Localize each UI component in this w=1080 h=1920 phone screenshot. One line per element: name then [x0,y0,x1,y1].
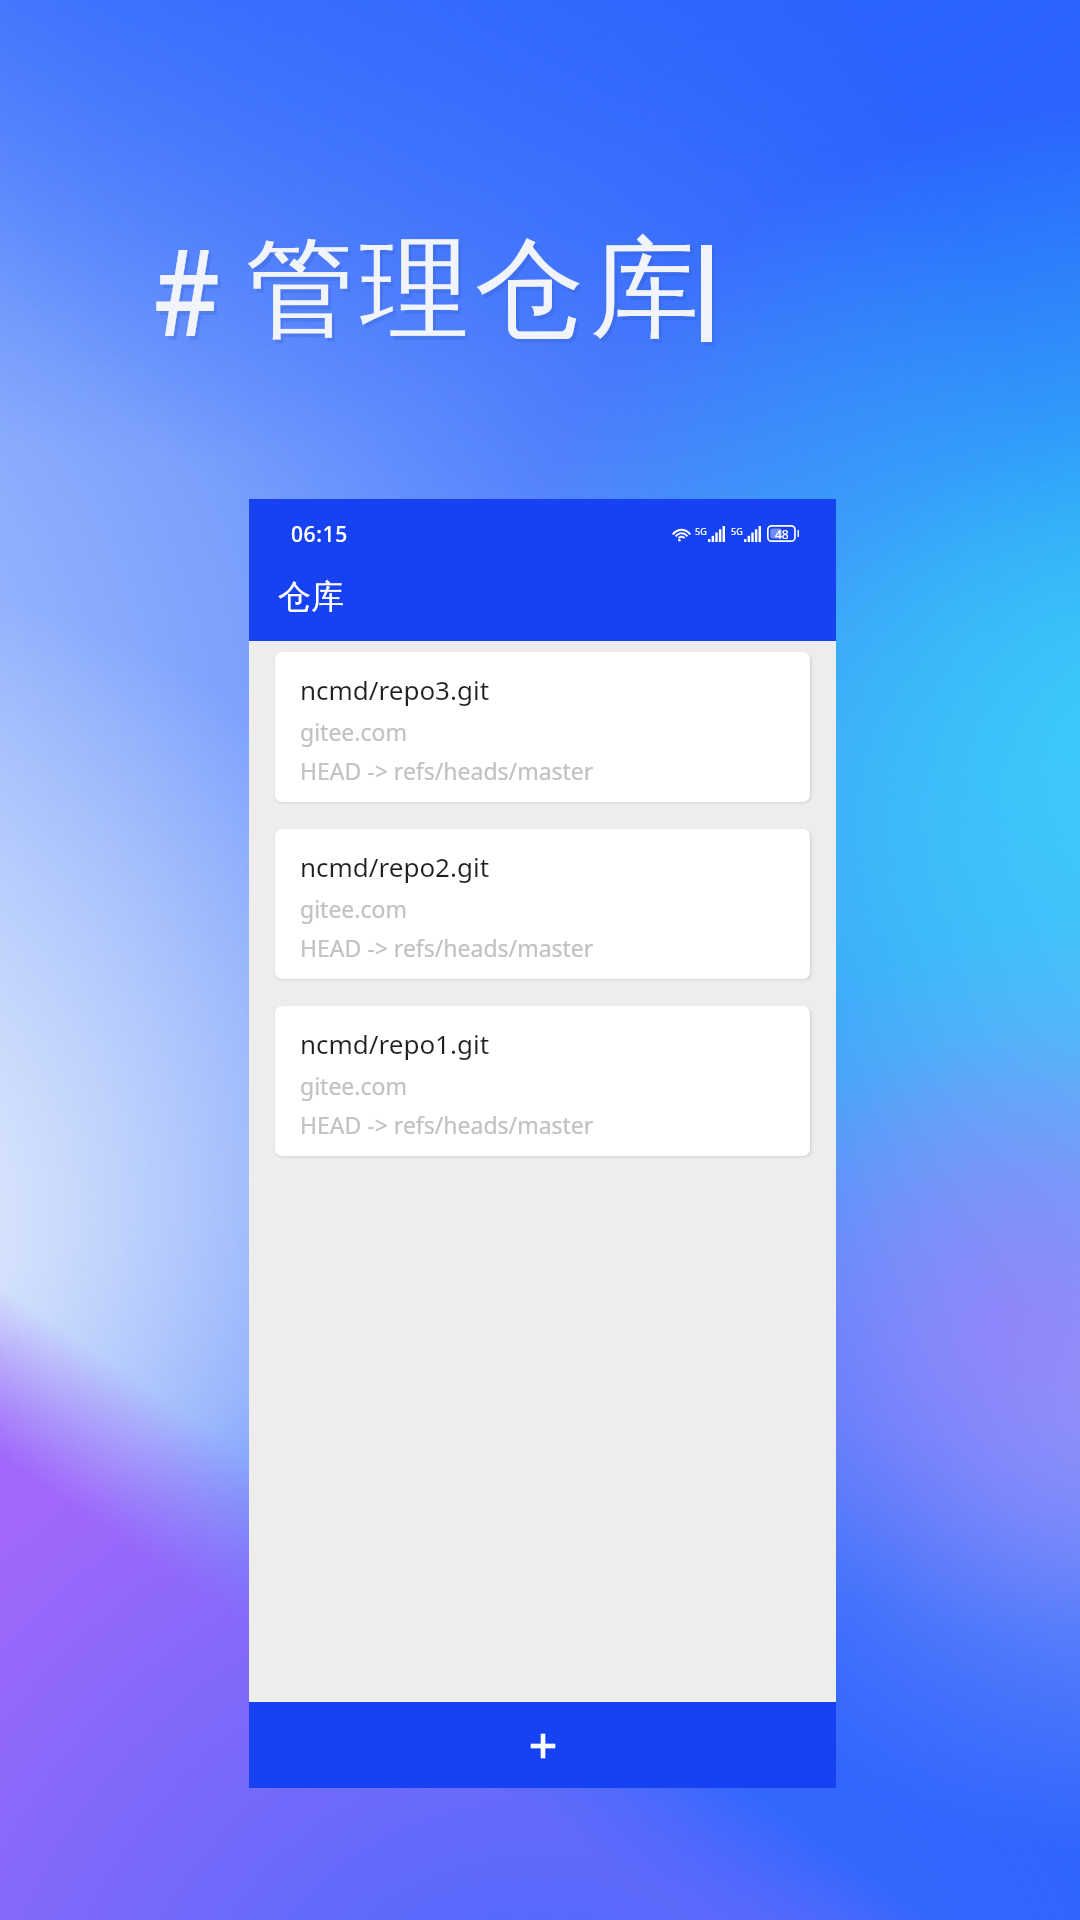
staticText: # [154,208,220,371]
staticText: ncmd/repo2.git [300,849,490,884]
button[interactable]: Repositories [249,499,836,641]
button[interactable]: Add repository [249,1702,836,1788]
staticText: 48 [775,526,789,542]
button[interactable]: ncmd/repo3.git [275,652,810,802]
staticText: 管理仓库 [245,225,705,362]
staticText: 仓库 [278,576,344,618]
staticText: ncmd/repo1.git [300,1026,490,1061]
staticText: 管理仓库 [242,221,702,358]
staticText: # [157,212,223,375]
staticText: HEAD -> refs/heads/master [300,755,594,786]
staticText: HEAD -> refs/heads/master [300,1109,594,1140]
staticText: ncmd/repo3.git [300,672,490,707]
staticText: 06:15 [291,520,348,549]
staticText: 5G [731,525,743,537]
staticText: HEAD -> refs/heads/master [300,932,594,963]
staticText: gitee.com [300,716,407,747]
button[interactable]: ncmd/repo2.git [275,829,810,979]
staticText: 5G [695,525,707,537]
staticText: gitee.com [300,1070,407,1101]
staticText: gitee.com [300,893,407,924]
button[interactable]: ncmd/repo1.git [275,1006,810,1156]
